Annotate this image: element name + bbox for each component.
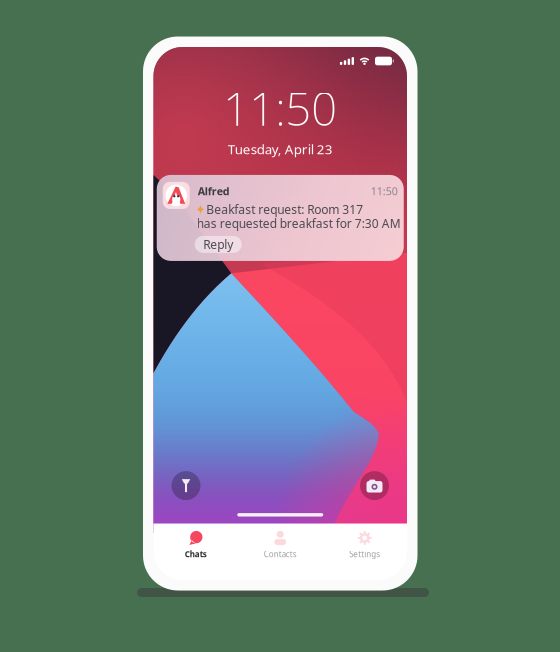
button[interactable]: Reply <box>195 236 242 253</box>
button[interactable]: Contacts <box>238 531 322 572</box>
staticText: Tuesday, April 23 <box>228 140 333 158</box>
staticText: Contacts <box>264 549 297 559</box>
staticText: Settings <box>349 549 380 559</box>
staticText: 11:50 <box>371 184 398 198</box>
button[interactable]: Flashlight <box>171 471 200 500</box>
button[interactable]: Camera <box>360 471 389 500</box>
staticText: 11:50 <box>223 78 337 138</box>
staticText: Reply <box>203 236 233 252</box>
staticText: Chats <box>185 549 207 559</box>
staticText: Beakfast request: Room 317 <box>206 201 363 217</box>
button[interactable]: Chats <box>153 531 238 572</box>
staticText: has requested breakfast for 7:30 AM <box>197 215 401 231</box>
staticText: Alfred <box>198 184 230 198</box>
button[interactable]: Settings <box>322 531 407 572</box>
